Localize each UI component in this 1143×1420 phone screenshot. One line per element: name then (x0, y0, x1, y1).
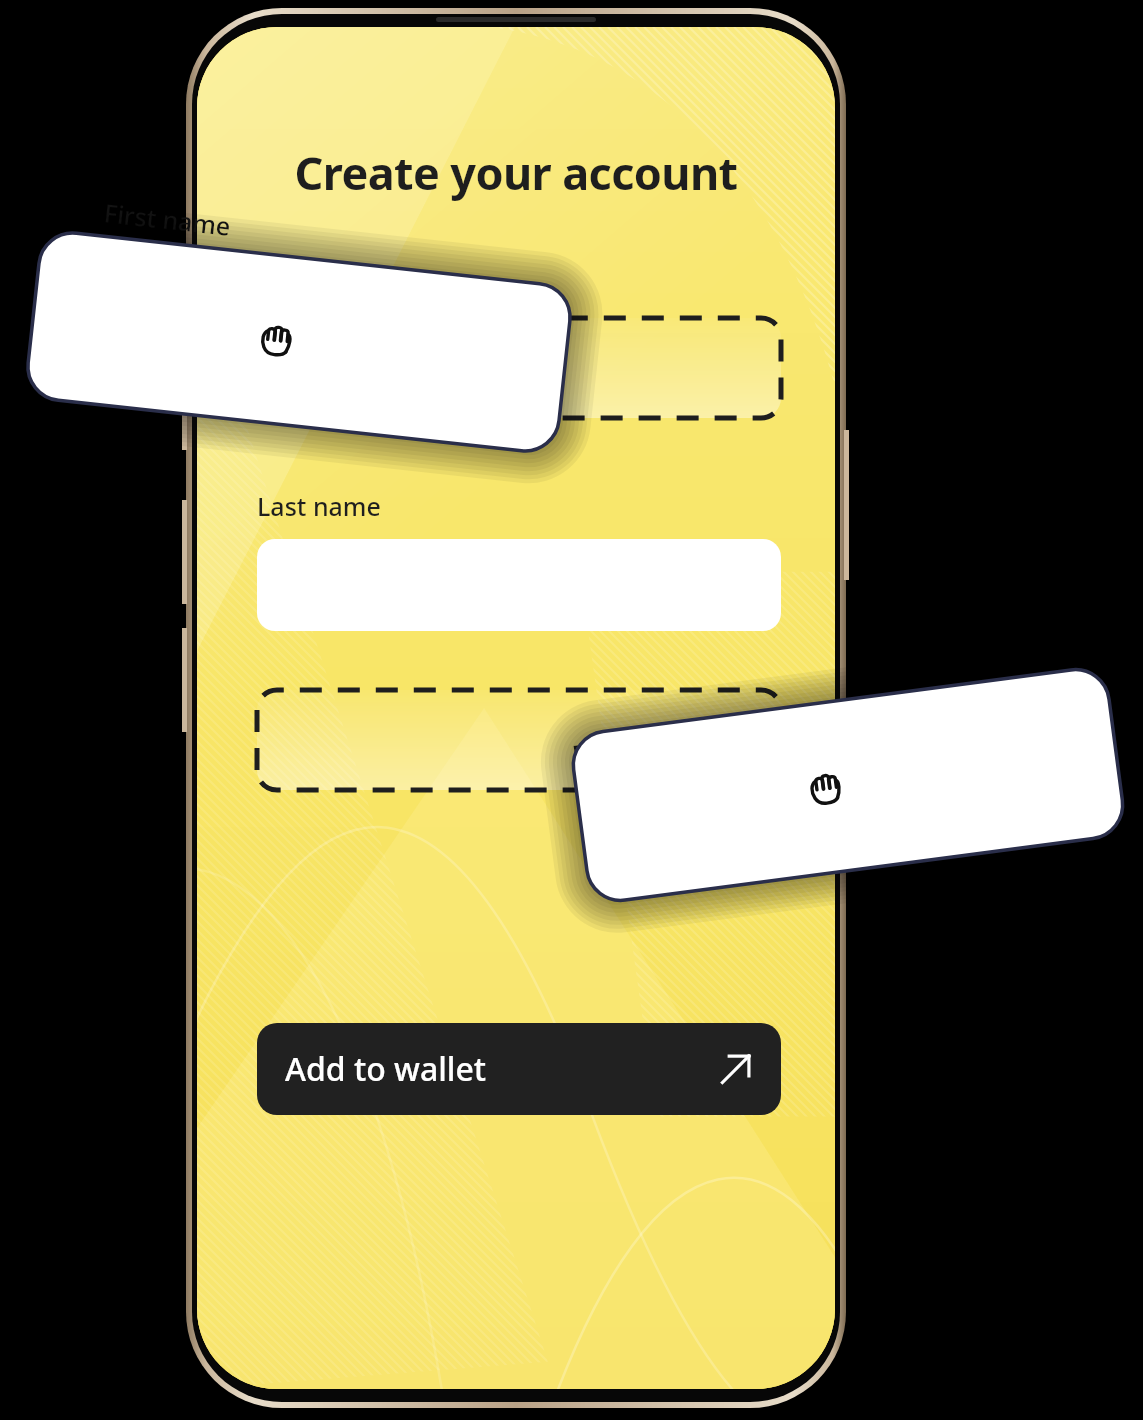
button[interactable]: Drag field (569, 665, 1127, 904)
staticText: Add to wallet (285, 1047, 487, 1091)
staticText: First name (102, 195, 232, 243)
button[interactable]: Add to wallet (257, 1023, 781, 1115)
staticText: Email (570, 727, 640, 771)
staticText: Last name (257, 489, 381, 523)
button[interactable]: Drag field (24, 230, 573, 454)
staticText: Create your account (294, 142, 738, 203)
button[interactable] (257, 539, 781, 631)
